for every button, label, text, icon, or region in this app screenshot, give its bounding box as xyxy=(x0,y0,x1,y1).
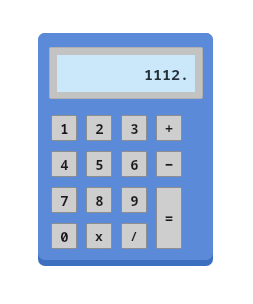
staticText: 9 xyxy=(130,191,139,210)
button[interactable]: Plus xyxy=(157,116,181,140)
staticText: − xyxy=(164,154,174,174)
button[interactable]: 6 xyxy=(122,152,146,176)
staticText: 2 xyxy=(95,119,104,138)
staticText: 8 xyxy=(95,191,104,210)
staticText: = xyxy=(164,208,174,228)
staticText: 3 xyxy=(130,119,139,138)
staticText: 5 xyxy=(95,155,104,174)
button[interactable]: Minus xyxy=(157,152,181,176)
button[interactable]: 2 xyxy=(87,116,111,140)
staticText: 6 xyxy=(130,155,139,174)
button[interactable]: Equals xyxy=(157,188,181,248)
button[interactable]: x xyxy=(87,224,111,248)
staticText: x xyxy=(95,227,103,245)
button[interactable]: 5 xyxy=(87,152,111,176)
button[interactable]: 1 xyxy=(52,116,76,140)
button[interactable]: 9 xyxy=(122,188,146,212)
button[interactable]: 4 xyxy=(52,152,76,176)
staticText: 0 xyxy=(60,227,69,246)
button[interactable]: / xyxy=(122,224,146,248)
staticText: 7 xyxy=(60,191,69,210)
button[interactable]: 8 xyxy=(87,188,111,212)
button[interactable]: 0 xyxy=(52,224,76,248)
staticText: 1112. xyxy=(143,64,189,84)
staticText: 4 xyxy=(60,155,69,174)
button[interactable]: 3 xyxy=(122,116,146,140)
staticText: 1 xyxy=(60,119,69,138)
staticText: + xyxy=(164,118,174,138)
button[interactable]: 7 xyxy=(52,188,76,212)
staticText: / xyxy=(130,227,138,245)
